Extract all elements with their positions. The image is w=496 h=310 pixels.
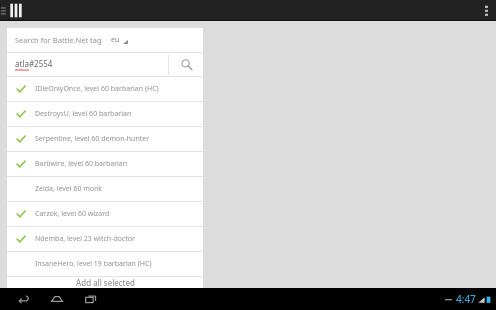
button[interactable]: Search xyxy=(169,53,203,76)
button[interactable]: Add all selected xyxy=(7,277,203,288)
button[interactable]: Status and clock xyxy=(445,292,491,306)
staticText: eu xyxy=(111,35,120,45)
staticText: atla#2554 xyxy=(15,58,53,69)
staticText: Add all selected xyxy=(76,277,135,288)
button[interactable]: InsaneHero, level 19 barbarian (HC) xyxy=(7,252,203,276)
button[interactable]: Recent apps xyxy=(78,288,104,310)
button[interactable]: IDieOnlyOnce, level 60 barbarian (HC) xyxy=(7,77,203,101)
staticText: InsaneHero, level 19 barbarian (HC) xyxy=(35,259,152,269)
button[interactable]: Ndemba, level 23 witch-doctor xyxy=(7,227,203,251)
staticText: IDieOnlyOnce, level 60 barbarian (HC) xyxy=(35,84,159,94)
button[interactable]: App icon, navigate up xyxy=(0,0,23,21)
button[interactable]: DestroysU, level 60 barbarian xyxy=(7,102,203,126)
staticText: Zelda, level 60 monk xyxy=(35,184,103,194)
button[interactable]: Zelda, level 60 monk xyxy=(7,177,203,201)
staticText: Search for Battle.Net tag xyxy=(15,35,102,45)
button[interactable]: Back xyxy=(10,288,36,310)
button[interactable]: eu xyxy=(110,35,129,45)
staticText: Ndemba, level 23 witch-doctor xyxy=(35,234,135,244)
button[interactable]: Carzok, level 60 wizard xyxy=(7,202,203,226)
button[interactable]: Barbwire, level 60 barbarian xyxy=(7,152,203,176)
staticText: Carzok, level 60 wizard xyxy=(35,209,110,219)
button[interactable]: Serpentine, level 60 demon-hunter xyxy=(7,127,203,151)
staticText: 4:47 xyxy=(456,292,476,306)
staticText: DestroysU, level 60 barbarian xyxy=(35,109,132,119)
button[interactable]: Home xyxy=(44,288,70,310)
staticText: Serpentine, level 60 demon-hunter xyxy=(35,134,150,144)
button[interactable]: More options xyxy=(476,0,496,21)
staticText: Barbwire, level 60 barbarian xyxy=(35,159,128,169)
